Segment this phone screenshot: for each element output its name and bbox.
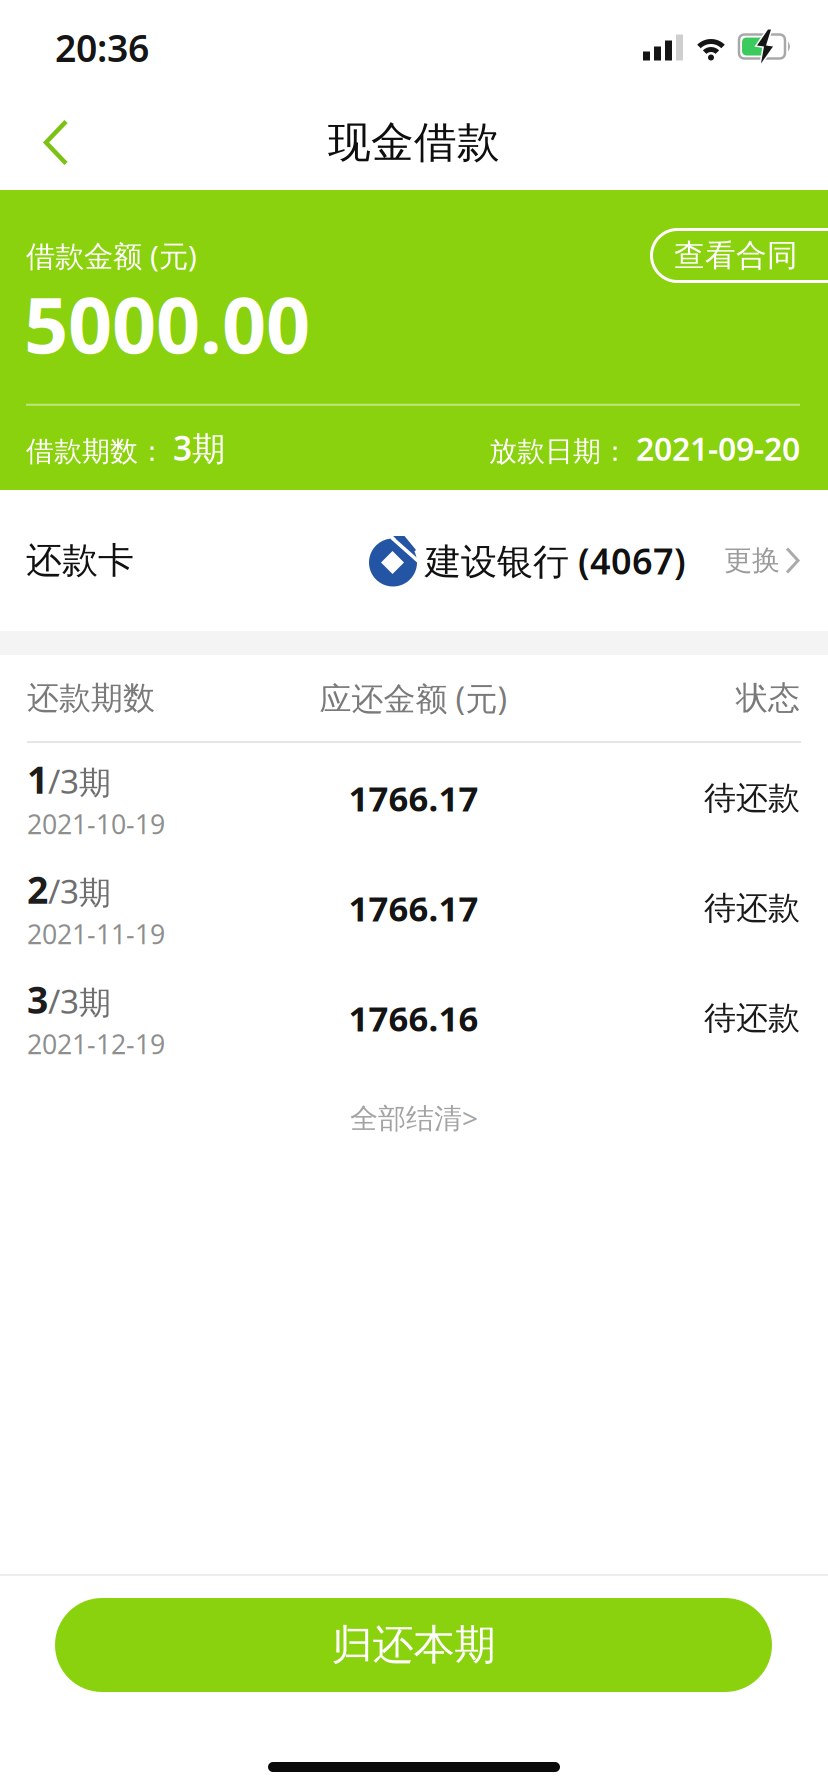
staticText: 借款期数： xyxy=(26,434,166,469)
staticText: 应还金额 (元) xyxy=(319,677,507,719)
staticText: 查看合同 xyxy=(674,237,798,274)
staticText: 还款卡 xyxy=(26,538,134,583)
staticText: 全部结清> xyxy=(350,1099,478,1136)
staticText: 期 xyxy=(79,873,111,913)
staticText: 借款金额 (元) xyxy=(26,236,197,275)
button[interactable]: 查看合同 xyxy=(620,228,828,283)
button[interactable]: 全部结清> xyxy=(350,1073,478,1136)
staticText: 1 xyxy=(27,754,48,804)
staticText: 待还款 xyxy=(704,998,800,1038)
staticText: 状态 xyxy=(736,678,800,718)
staticText: 2 xyxy=(27,864,48,914)
staticText: 2021-11-19 xyxy=(27,916,165,951)
staticText: 3期 xyxy=(173,426,225,470)
staticText: /3 xyxy=(48,759,79,803)
staticText: 待还款 xyxy=(704,888,800,928)
button[interactable]: 返回 xyxy=(0,117,72,167)
staticText: 2021-10-19 xyxy=(27,806,165,841)
staticText: 还款期数 xyxy=(27,678,155,718)
staticText: 1766.16 xyxy=(348,995,478,1041)
staticText: 期 xyxy=(79,763,111,803)
staticText: 2021-12-19 xyxy=(27,1026,165,1061)
staticText: /3 xyxy=(48,869,79,913)
staticText: 归还本期 xyxy=(331,1620,495,1670)
staticText: 期 xyxy=(79,983,111,1023)
staticText: 更换 xyxy=(724,543,780,578)
button[interactable]: 还款卡 xyxy=(0,534,828,586)
staticText: 20:36 xyxy=(55,23,149,72)
staticText: 1766.17 xyxy=(348,775,478,821)
button[interactable]: 归还本期 xyxy=(0,1576,828,1692)
staticText: 建设银行 (4067) xyxy=(425,537,686,584)
staticText: 2021-09-20 xyxy=(636,427,800,470)
staticText: 放款日期： xyxy=(489,434,629,469)
staticText: 待还款 xyxy=(704,778,800,818)
staticText: /3 xyxy=(48,979,79,1023)
staticText: 1766.17 xyxy=(348,885,478,931)
staticText: 3 xyxy=(27,974,48,1024)
staticText: 现金借款 xyxy=(328,116,500,169)
staticText: 5000.00 xyxy=(24,272,310,375)
